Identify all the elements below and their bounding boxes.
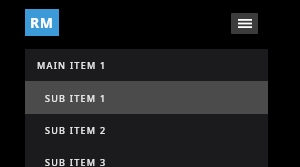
staticText: SUB ITEM 1 <box>45 92 107 104</box>
staticText: MAIN ITEM 1 <box>37 59 107 71</box>
button[interactable]: RM <box>25 9 59 36</box>
staticText: SUB ITEM 3 <box>45 156 107 167</box>
staticText: SUB ITEM 2 <box>45 124 107 136</box>
button[interactable]: Open navigation menu <box>231 13 258 34</box>
button[interactable]: SUB ITEM 1 <box>25 81 268 114</box>
button[interactable]: MAIN ITEM 1 <box>25 49 268 81</box>
button[interactable]: SUB ITEM 3 <box>25 146 268 167</box>
button[interactable]: SUB ITEM 2 <box>25 114 268 146</box>
staticText: RM <box>30 13 54 32</box>
